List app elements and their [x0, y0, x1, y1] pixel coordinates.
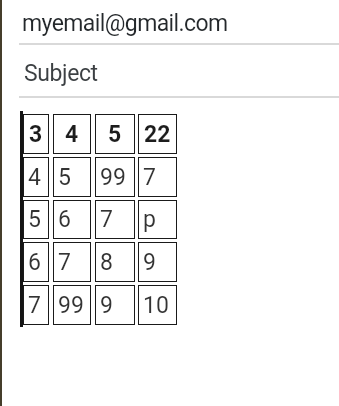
staticText: 9	[100, 292, 113, 319]
staticText: 22	[144, 121, 171, 148]
staticText: 99	[100, 164, 126, 191]
staticText: 4	[28, 164, 41, 191]
staticText: p	[143, 206, 156, 233]
staticText: 8	[100, 249, 113, 276]
staticText: 10	[143, 292, 169, 319]
staticText: 7	[143, 164, 156, 191]
staticText: 7	[58, 249, 71, 276]
button[interactable]: Subject	[0, 45, 339, 96]
staticText: 5	[108, 121, 122, 148]
button[interactable]: myemail@gmail.com	[0, 0, 339, 43]
staticText: 6	[58, 206, 71, 233]
staticText: 4	[65, 121, 79, 148]
staticText: 99	[58, 292, 84, 319]
staticText: 5	[28, 206, 41, 233]
staticText: 5	[58, 164, 71, 191]
staticText: 9	[143, 249, 156, 276]
staticText: Subject	[24, 60, 98, 87]
staticText: 7	[100, 206, 113, 233]
staticText: 7	[28, 292, 41, 319]
staticText: 6	[28, 249, 41, 276]
staticText: myemail@gmail.com	[22, 10, 228, 37]
staticText: 3	[29, 121, 43, 148]
